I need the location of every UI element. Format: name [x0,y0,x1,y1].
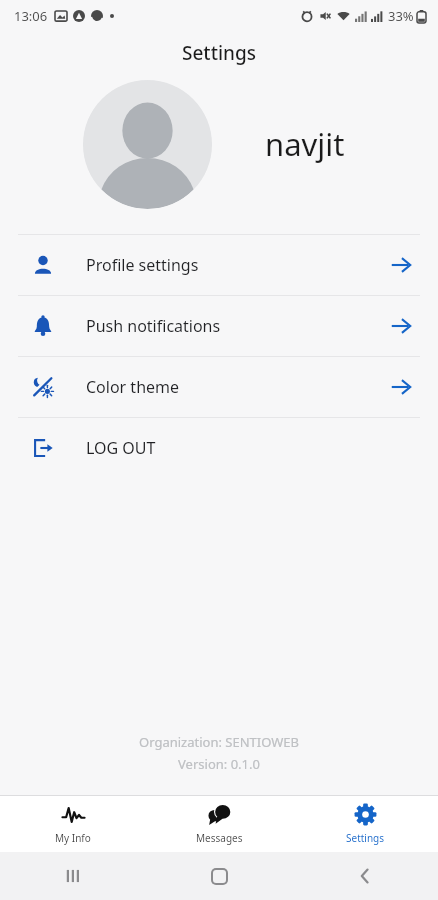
staticText: Organization: SENTIOWEB [139,733,299,751]
button[interactable]: LOG OUT [0,418,438,478]
button[interactable]: Push notifications [0,296,438,356]
staticText: Push notifications [86,315,221,337]
staticText: 33% [388,7,414,25]
button[interactable]: My Info [0,796,146,852]
button[interactable]: Messages [146,796,292,852]
staticText: Profile settings [86,254,199,276]
staticText: Settings [346,831,385,845]
staticText: Color theme [86,376,180,398]
button[interactable]: Settings [292,796,438,852]
button[interactable]: Recent apps [0,852,146,900]
button[interactable]: Profile settings [0,235,438,295]
button[interactable]: Back [292,852,438,900]
staticText: LOG OUT [86,437,156,459]
button[interactable]: Home [146,852,292,900]
staticText: 13:06 [14,7,48,25]
staticText: Settings [182,40,256,66]
staticText: navjit [265,123,345,165]
staticText: Version: 0.1.0 [178,755,260,773]
button[interactable]: Color theme [0,357,438,417]
staticText: My Info [55,831,91,845]
staticText: Messages [196,831,243,845]
